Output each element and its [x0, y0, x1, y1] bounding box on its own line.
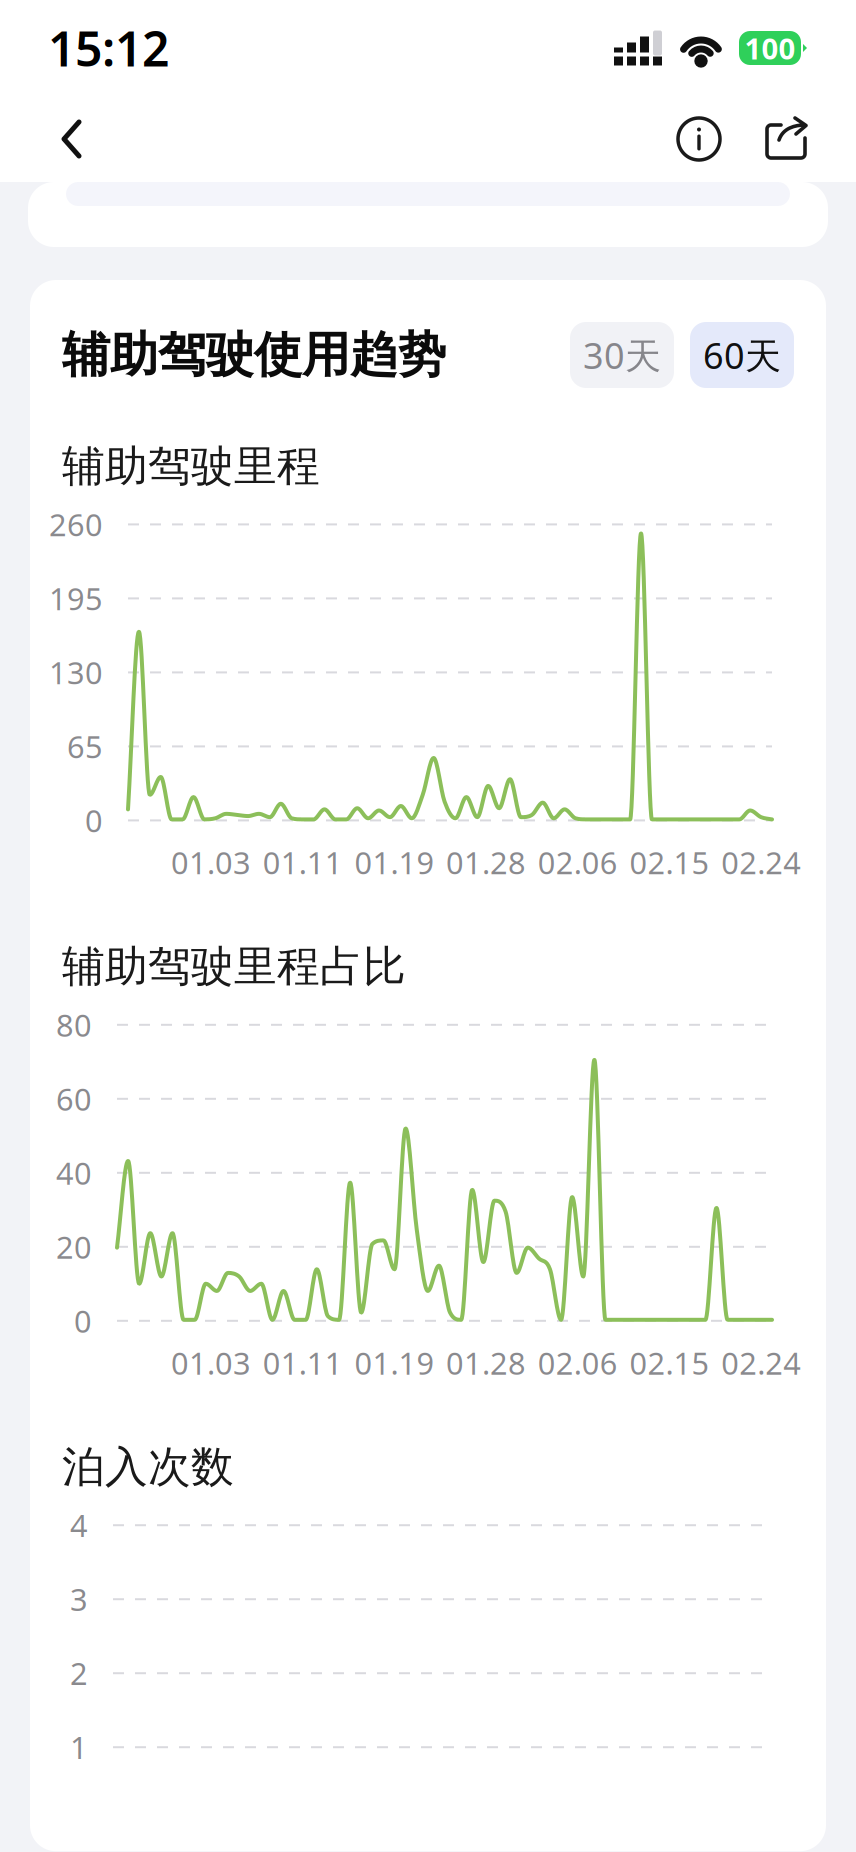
staticText: 01.19 — [354, 1342, 434, 1383]
staticText: 15:12 — [48, 16, 169, 80]
staticText: 30天 — [583, 331, 661, 379]
staticText: 01.03 — [171, 1342, 251, 1383]
staticText: 100 — [744, 28, 795, 67]
button[interactable]: 60天 — [690, 322, 794, 388]
staticText: 65 — [67, 726, 103, 767]
button[interactable]: Back — [38, 105, 106, 173]
staticText: 01.28 — [446, 1342, 526, 1383]
staticText: 40 — [56, 1152, 92, 1193]
button[interactable]: Info — [668, 108, 730, 170]
staticText: 60天 — [703, 331, 781, 379]
staticText: 01.11 — [263, 1342, 343, 1383]
staticText: 2 — [70, 1653, 88, 1694]
staticText: 辅助驾驶使用趋势 — [62, 325, 446, 384]
staticText: 辅助驾驶里程 — [62, 440, 320, 492]
staticText: 02.06 — [538, 842, 618, 883]
staticText: 02.15 — [629, 1342, 709, 1383]
staticText: 60 — [56, 1078, 92, 1119]
staticText: 02.24 — [721, 1342, 801, 1383]
staticText: 02.06 — [538, 1342, 618, 1383]
staticText: 02.15 — [629, 842, 709, 883]
staticText: 20 — [56, 1226, 92, 1267]
staticText: 01.03 — [171, 842, 251, 883]
staticText: 0 — [85, 800, 103, 841]
staticText: 80 — [56, 1004, 92, 1045]
staticText: 01.28 — [446, 842, 526, 883]
staticText: 02.24 — [721, 842, 801, 883]
button[interactable]: Share — [756, 108, 818, 170]
staticText: 4 — [70, 1505, 88, 1546]
staticText: 0 — [74, 1300, 92, 1341]
staticText: 泊入次数 — [62, 1441, 234, 1493]
staticText: 01.11 — [263, 842, 343, 883]
staticText: 辅助驾驶里程占比 — [62, 940, 406, 993]
staticText: 260 — [49, 504, 103, 545]
staticText: 1 — [70, 1727, 88, 1768]
staticText: 195 — [49, 578, 103, 619]
button[interactable]: 30天 — [570, 322, 674, 388]
staticText: 3 — [70, 1579, 88, 1620]
staticText: 130 — [49, 652, 103, 693]
staticText: 01.19 — [354, 842, 434, 883]
